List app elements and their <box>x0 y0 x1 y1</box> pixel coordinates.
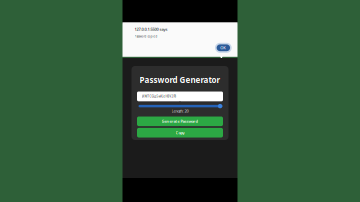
button[interactable]: OK <box>215 43 232 53</box>
staticText: Password copied <box>134 35 157 38</box>
staticText: Length: 20 <box>171 108 188 113</box>
staticText: 127.0.0.1:5500 says <box>134 27 167 32</box>
staticText: OK <box>220 45 226 50</box>
button[interactable]: Generate Password <box>137 116 223 126</box>
staticText: Password Generator <box>139 75 220 85</box>
button[interactable]: Copy <box>137 128 223 137</box>
staticText: sXNf7CGLq5wKJeHBV2F8 <box>141 95 176 98</box>
staticText: Copy <box>175 130 184 135</box>
staticText: Generate Password <box>161 119 198 124</box>
